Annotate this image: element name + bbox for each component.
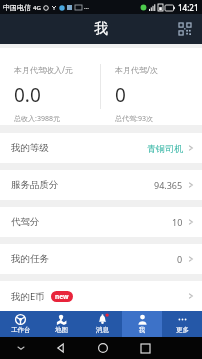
button[interactable]: 工作台	[0, 311, 41, 337]
staticText: 14:21	[178, 2, 199, 13]
button[interactable]: Back	[52, 339, 70, 357]
button[interactable]: Scan QR code	[174, 18, 196, 40]
staticText: 0.0	[14, 82, 41, 108]
staticText: 我的E币	[11, 290, 45, 303]
staticText: 工作台	[11, 326, 31, 334]
staticText: 我	[139, 326, 146, 334]
button[interactable]: 我	[122, 311, 162, 337]
staticText: 代驾分	[11, 216, 40, 228]
staticText: 总收入:3988元	[14, 114, 60, 124]
staticText: 地图	[55, 326, 68, 334]
staticText: 服务品质分	[11, 179, 59, 191]
staticText: 0	[115, 82, 126, 108]
button[interactable]: Hide keyboard	[14, 341, 28, 355]
staticText: 94.365	[154, 179, 183, 191]
staticText: 总代驾:93次	[115, 114, 153, 124]
button[interactable]: 服务品质分	[0, 170, 202, 200]
button[interactable]: 代驾分	[0, 207, 202, 237]
staticText: 消息	[96, 326, 109, 334]
button[interactable]: Recent apps	[136, 339, 154, 357]
button[interactable]: 更多	[162, 311, 202, 337]
staticText: 0	[177, 253, 183, 265]
button[interactable]: 地图	[41, 311, 82, 337]
button[interactable]: 我的等级	[0, 133, 202, 163]
button[interactable]: 我的任务	[0, 244, 202, 274]
button[interactable]: 我的E币	[0, 281, 202, 311]
staticText: 我的任务	[11, 253, 49, 265]
staticText: 本月代驾收入/元	[14, 64, 73, 75]
staticText: 我的等级	[11, 142, 49, 154]
staticText: 更多	[176, 326, 189, 334]
staticText: 10	[172, 216, 183, 228]
staticText: 4G	[33, 4, 41, 12]
staticText: ···	[84, 4, 89, 12]
staticText: 我	[94, 20, 108, 38]
staticText: 本月代驾/次	[115, 64, 158, 75]
button[interactable]: Home	[94, 339, 112, 357]
staticText: 青铜司机	[147, 143, 183, 154]
staticText: 中国电信	[3, 3, 31, 12]
button[interactable]: 消息	[82, 311, 122, 337]
staticText: new	[55, 292, 69, 301]
